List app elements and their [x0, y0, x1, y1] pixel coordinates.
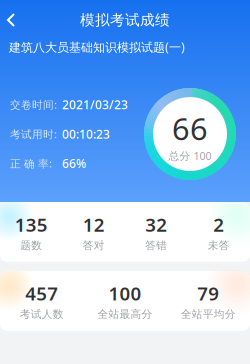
staticText: 00:10:23: [62, 126, 110, 142]
staticText: 79: [197, 281, 219, 306]
staticText: 答错: [145, 239, 167, 252]
button[interactable]: Back: [0, 6, 36, 34]
staticText: 建筑八大员基础知识模拟试题(一): [9, 39, 185, 55]
staticText: 未答: [208, 239, 230, 252]
staticText: 考试用时:: [10, 127, 57, 141]
staticText: 32: [145, 212, 167, 237]
staticText: 正 确 率:: [10, 156, 52, 171]
staticText: 66: [172, 108, 208, 149]
staticText: 全站平均分: [181, 308, 236, 321]
staticText: 全站最高分: [97, 308, 152, 321]
staticText: 135: [15, 212, 48, 237]
staticText: 答对: [83, 239, 105, 252]
staticText: 66%: [62, 155, 86, 171]
staticText: 交卷时间:: [10, 97, 57, 112]
staticText: 100: [108, 281, 141, 306]
staticText: 考试人数: [20, 308, 64, 321]
staticText: 模拟考试成绩: [80, 11, 170, 29]
staticText: 总分 100: [168, 149, 211, 163]
staticText: 12: [83, 212, 105, 237]
staticText: 2: [213, 212, 224, 237]
staticText: 题数: [20, 239, 42, 252]
staticText: 2021/03/23: [62, 97, 128, 112]
staticText: 457: [25, 281, 58, 306]
